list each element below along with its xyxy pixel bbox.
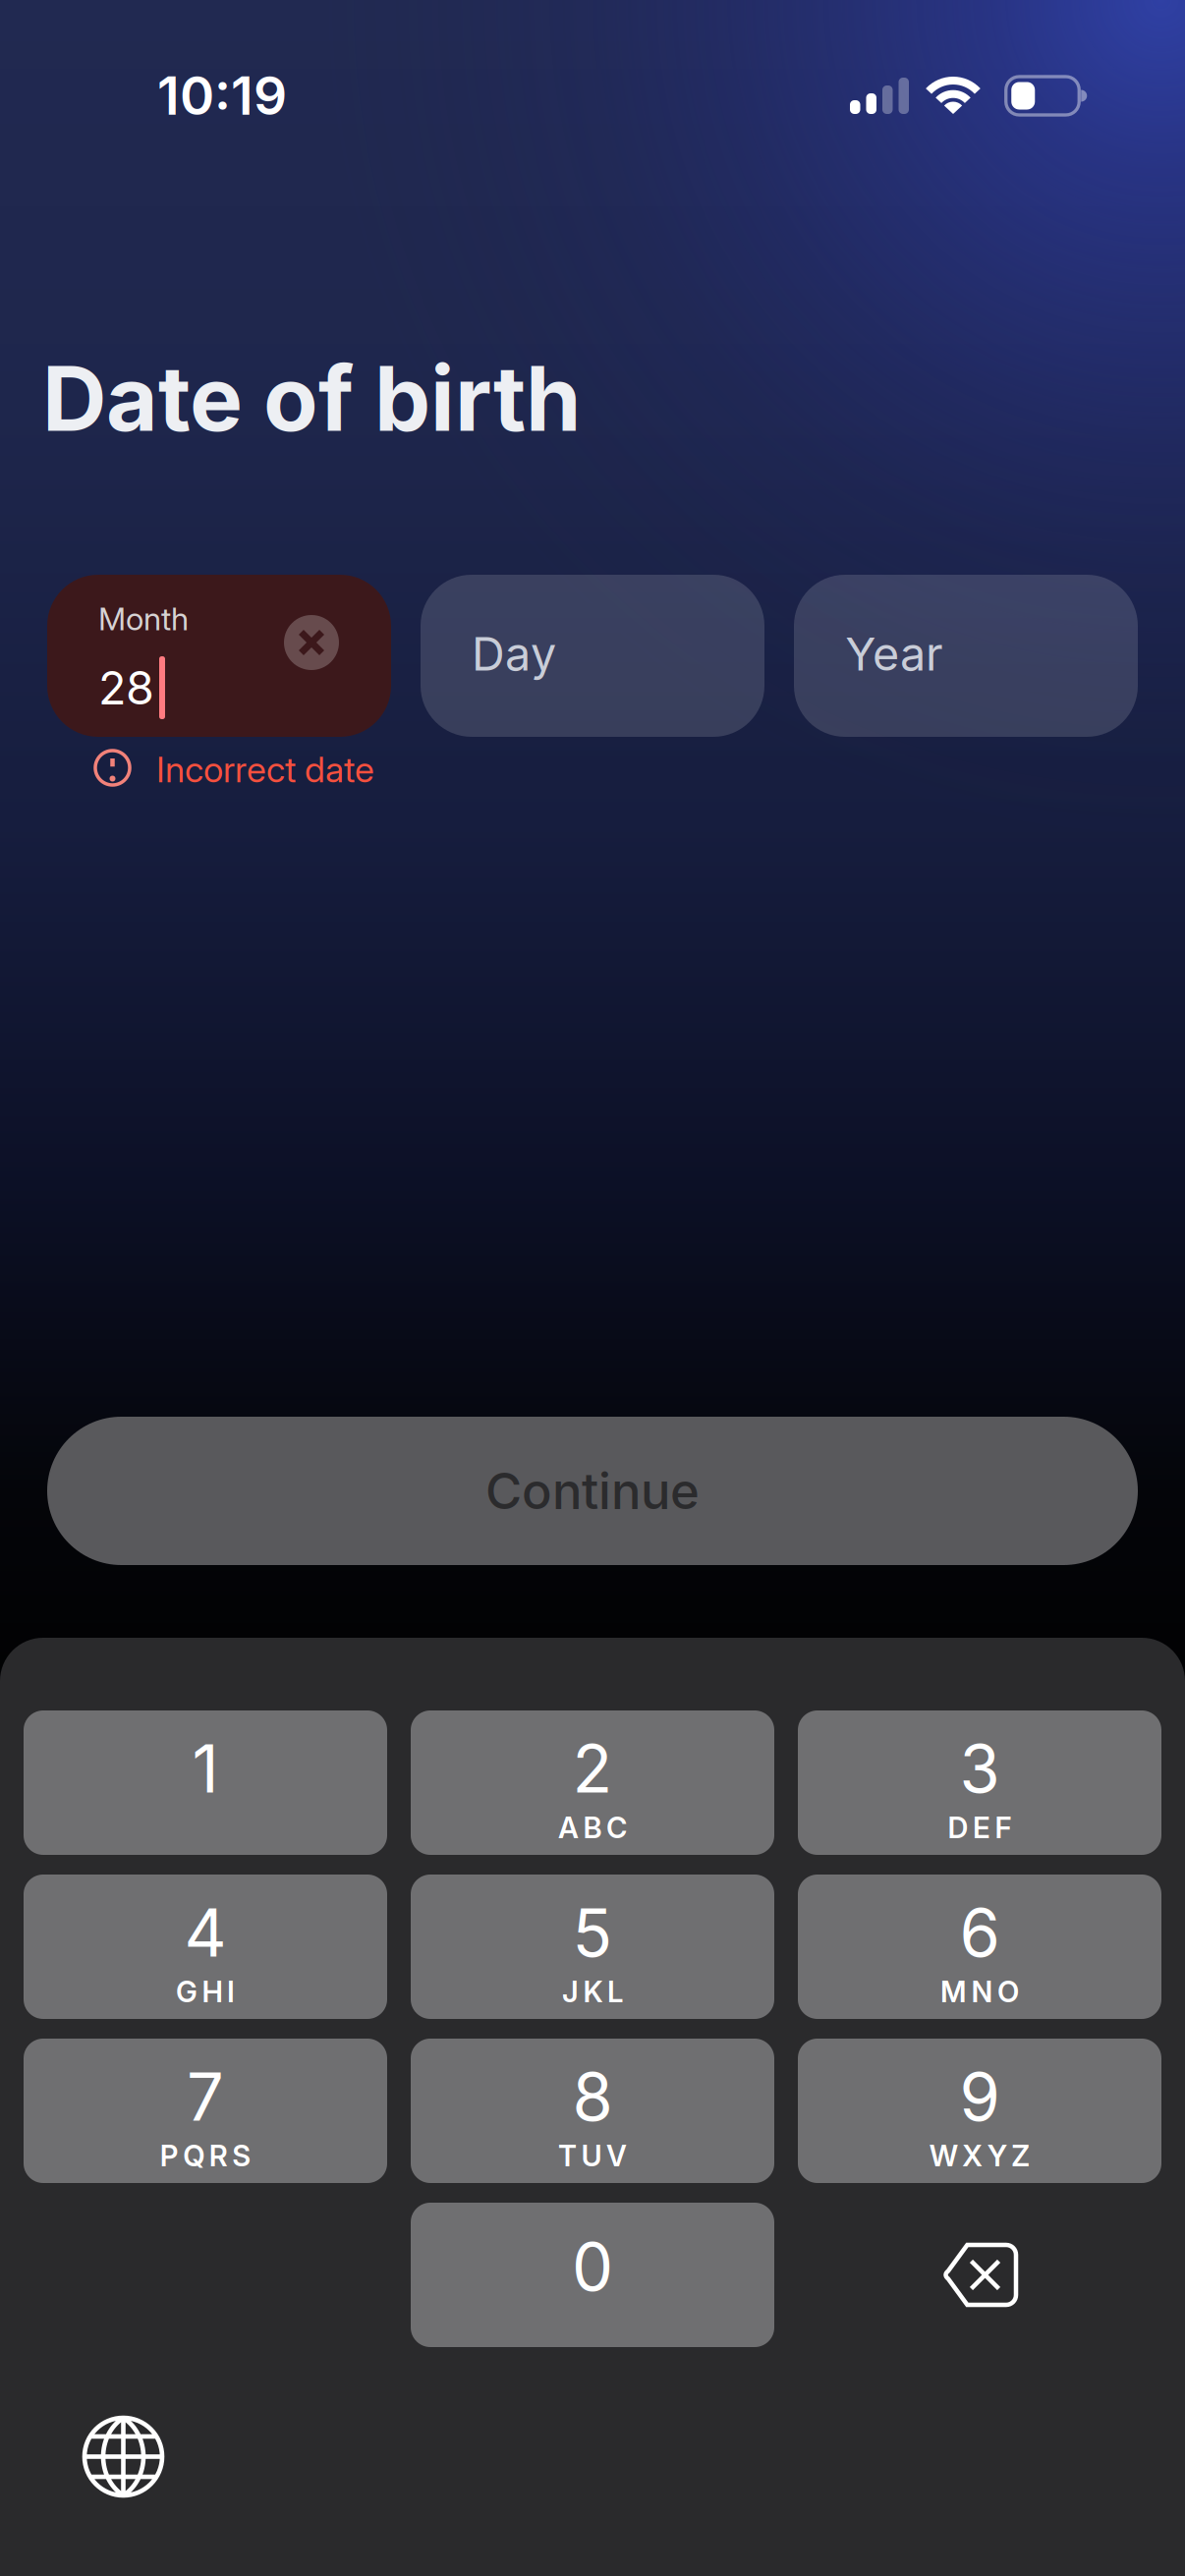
staticText: Incorrect date	[156, 749, 374, 790]
button[interactable]: 3	[798, 1710, 1161, 1855]
staticText: Day	[472, 627, 556, 681]
staticText: Continue	[485, 1462, 700, 1520]
button[interactable]: Day	[421, 575, 764, 737]
staticText: ABC	[558, 1811, 627, 1845]
staticText: 4	[184, 1894, 226, 1971]
button[interactable]: 1	[24, 1710, 387, 1855]
staticText: Month	[98, 600, 189, 637]
staticText: 3	[959, 1730, 1000, 1807]
button[interactable]: 9	[798, 2039, 1161, 2183]
button[interactable]: 6	[798, 1875, 1161, 2019]
button[interactable]: 4	[24, 1875, 387, 2019]
staticText: 1	[192, 1730, 219, 1807]
button[interactable]: 5	[411, 1875, 774, 2019]
staticText: PQRS	[160, 2139, 251, 2173]
button[interactable]: Clear	[284, 615, 339, 670]
staticText: 2	[572, 1730, 613, 1807]
button[interactable]: Year	[794, 575, 1138, 737]
staticText: Date of birth	[42, 346, 581, 451]
button[interactable]: Continue	[47, 1417, 1138, 1565]
staticText: DEF	[948, 1811, 1012, 1845]
staticText: 0	[572, 2228, 613, 2305]
button[interactable]: 8	[411, 2039, 774, 2183]
staticText: 10:19	[157, 65, 287, 127]
staticText: GHI	[176, 1975, 235, 2009]
staticText: 8	[572, 2058, 613, 2135]
button[interactable]: Month	[47, 575, 391, 737]
staticText: Year	[845, 627, 943, 681]
button[interactable]: Next keyboard	[85, 2418, 162, 2495]
staticText: MNO	[940, 1975, 1019, 2009]
staticText: 9	[959, 2058, 1000, 2135]
button[interactable]: Delete	[798, 2203, 1161, 2347]
staticText: 5	[572, 1894, 613, 1971]
button[interactable]: 2	[411, 1710, 774, 1855]
staticText: TUV	[558, 2139, 627, 2173]
staticText: 7	[187, 2058, 224, 2135]
button[interactable]: 0	[411, 2203, 774, 2347]
button[interactable]: 7	[24, 2039, 387, 2183]
staticText: 6	[959, 1894, 1000, 1971]
staticText: 28	[98, 661, 154, 715]
staticText: WXYZ	[929, 2139, 1030, 2173]
staticText: JKL	[562, 1975, 623, 2009]
